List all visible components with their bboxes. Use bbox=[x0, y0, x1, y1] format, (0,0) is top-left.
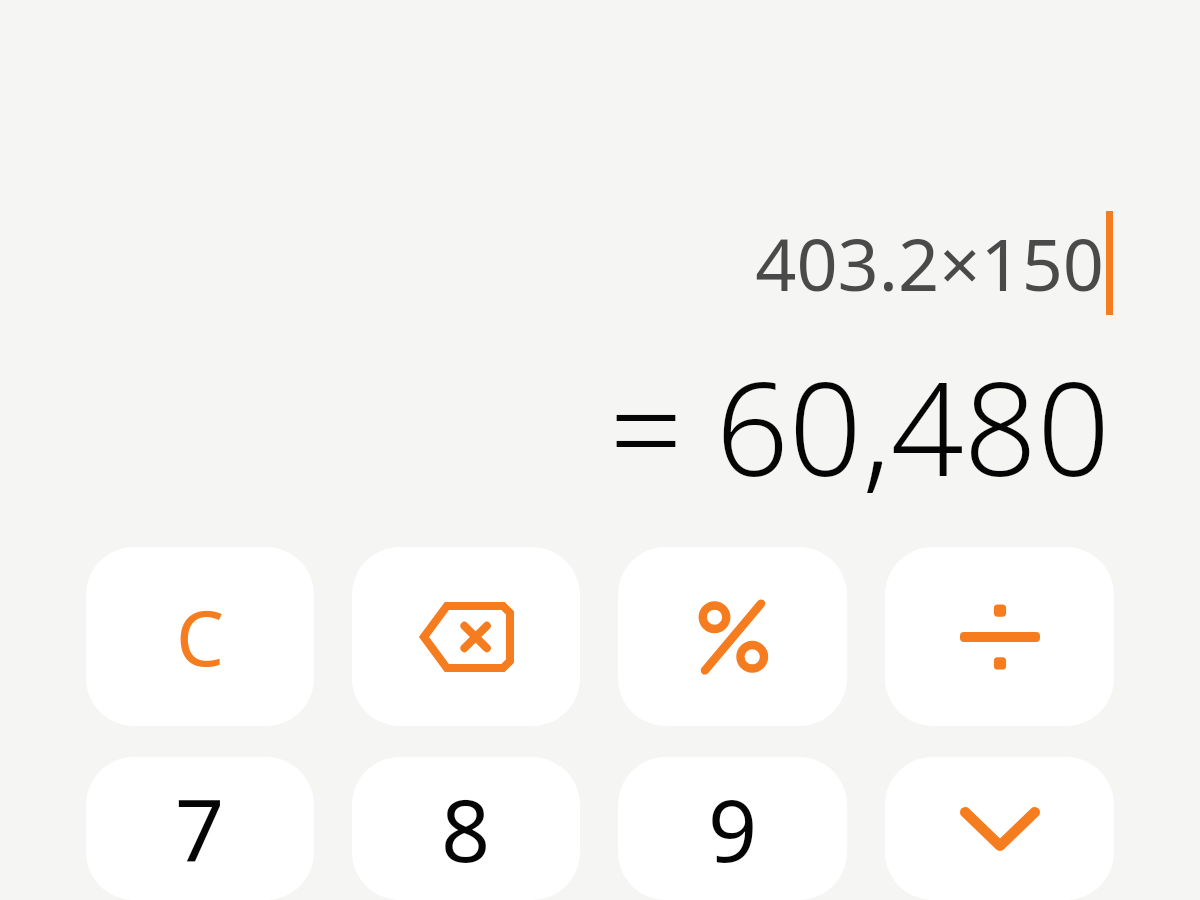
staticText: 9 bbox=[708, 770, 758, 887]
staticText: 403.2×150 bbox=[755, 214, 1104, 312]
staticText: C bbox=[176, 585, 225, 689]
staticText: 7 bbox=[175, 770, 225, 887]
button[interactable]: 7 bbox=[86, 757, 314, 900]
button[interactable]: Clear bbox=[86, 547, 314, 726]
staticText: 8 bbox=[441, 770, 491, 887]
button[interactable]: Divide bbox=[885, 547, 1114, 726]
button[interactable]: Percent bbox=[618, 547, 847, 726]
button[interactable]: 9 bbox=[618, 757, 847, 900]
staticText: = 60,480 bbox=[609, 339, 1110, 513]
button[interactable]: Backspace bbox=[352, 547, 580, 726]
button[interactable]: Expand bbox=[885, 757, 1114, 900]
button[interactable]: 8 bbox=[352, 757, 580, 900]
